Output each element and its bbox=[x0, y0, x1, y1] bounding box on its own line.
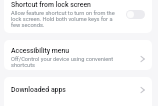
button[interactable]: Shortcut from lock screen bbox=[4, 0, 152, 33]
staticText: Accessibility menu bbox=[11, 47, 70, 55]
staticText: Off/Control your device using convenient… bbox=[11, 56, 126, 68]
staticText: Shortcut from lock screen bbox=[11, 1, 91, 9]
button[interactable]: Shortcut from lock screen toggle bbox=[126, 10, 145, 19]
button[interactable]: Accessibility menu bbox=[4, 40, 152, 70]
button[interactable]: Downloaded apps bbox=[4, 77, 152, 106]
staticText: Allow feature shortcut to turn on from t… bbox=[11, 10, 121, 28]
staticText: Downloaded apps bbox=[11, 86, 66, 94]
